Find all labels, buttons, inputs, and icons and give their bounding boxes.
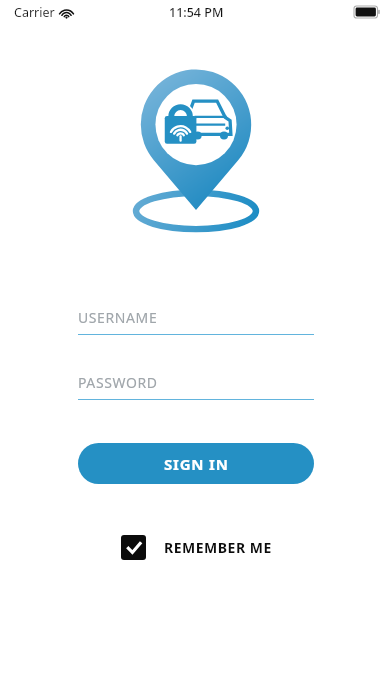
staticText: USERNAME (78, 308, 158, 327)
staticText: REMEMBER ME (164, 538, 272, 557)
button[interactable]: USERNAME (78, 308, 314, 335)
button[interactable]: REMEMBER ME (117, 531, 276, 564)
staticText: Carrier (14, 4, 55, 21)
staticText: PASSWORD (78, 373, 158, 392)
staticText: 11:54 PM (169, 4, 224, 21)
button[interactable]: SIGN IN (78, 443, 314, 484)
button[interactable]: PASSWORD (78, 373, 314, 400)
staticText: SIGN IN (164, 454, 229, 474)
